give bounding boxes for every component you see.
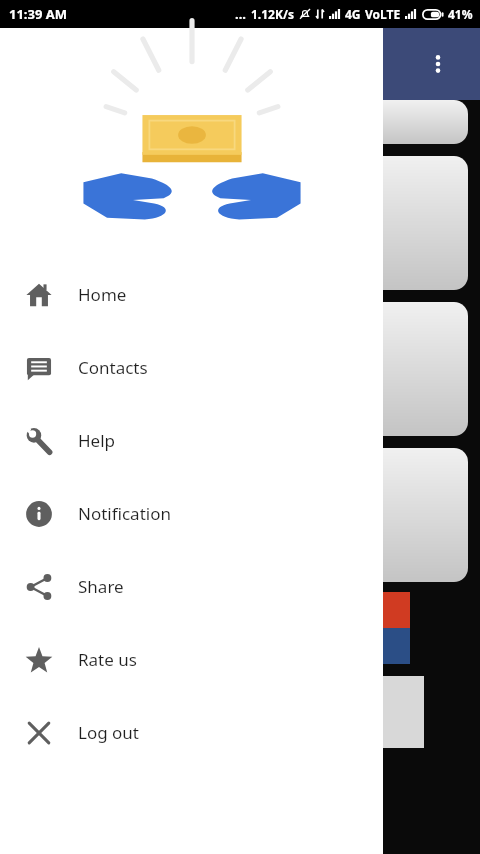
staticText: Rate us [78, 648, 137, 671]
button[interactable]: Log out [0, 696, 383, 769]
staticText: Contacts [78, 356, 148, 379]
button[interactable]: Rate us [0, 623, 383, 696]
staticText: Notification [78, 502, 171, 525]
button[interactable]: Notification [0, 477, 383, 550]
button[interactable] [12, 156, 468, 290]
button[interactable]: Contacts [0, 331, 383, 404]
button[interactable] [12, 100, 468, 144]
button[interactable]: Share [0, 550, 383, 623]
staticText: 41% [448, 6, 473, 22]
button[interactable]: C L U B FACTORY [12, 592, 410, 664]
staticText: Help [78, 429, 116, 452]
button[interactable]: Help [0, 404, 383, 477]
staticText: Share [78, 575, 124, 598]
staticText: 4G [345, 6, 361, 22]
button[interactable] [12, 448, 468, 582]
staticText: Log out [78, 721, 139, 744]
staticText: VoLTE [365, 6, 401, 22]
staticText: 1.12K/s [251, 6, 294, 22]
button[interactable] [12, 302, 468, 436]
button[interactable]: BUY NOW [12, 676, 424, 748]
button[interactable]: More options [420, 46, 456, 82]
button[interactable]: Home [0, 258, 383, 331]
staticText: ... [235, 5, 246, 23]
staticText: 11:39 AM [9, 5, 68, 23]
staticText: Home [78, 283, 127, 306]
